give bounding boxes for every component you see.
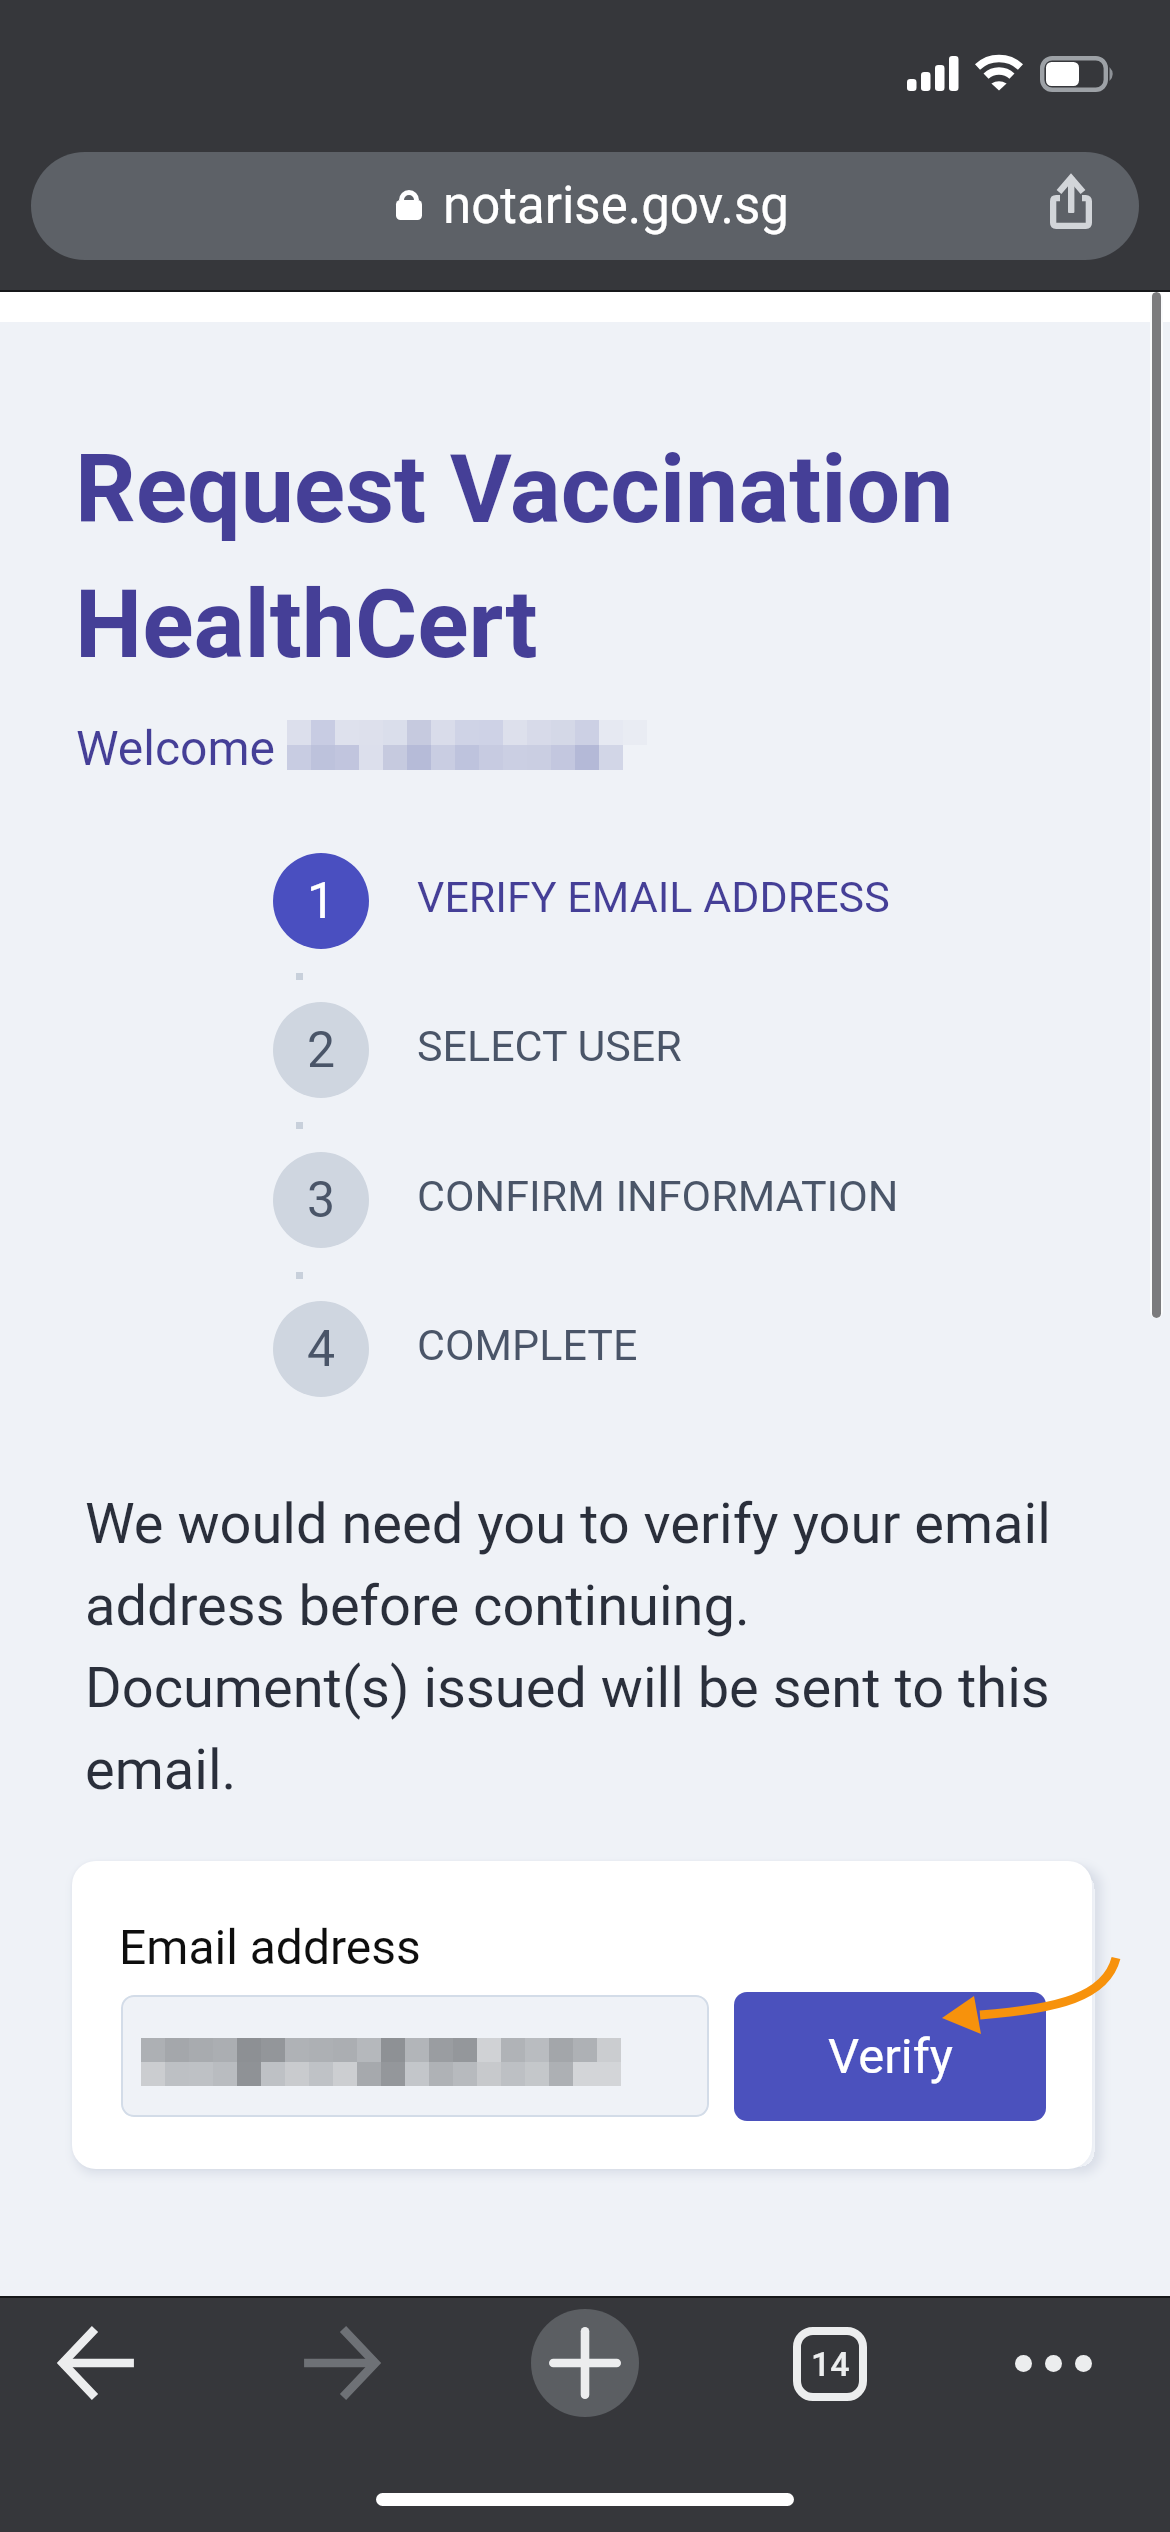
- button[interactable]: Share: [1040, 165, 1104, 229]
- button[interactable]: 1: [273, 853, 1063, 949]
- button[interactable]: Back: [36, 2291, 180, 2435]
- staticText: Request Vaccination HealthCert: [75, 434, 954, 680]
- button[interactable]: More: [984, 2294, 1122, 2432]
- button[interactable]: notarise.gov.sg: [31, 152, 1139, 260]
- button[interactable]: Forward: [258, 2291, 402, 2435]
- button[interactable]: Verify: [734, 1992, 1046, 2121]
- button[interactable]: 2: [273, 1002, 1063, 1098]
- staticText: CONFIRM INFORMATION: [417, 1171, 899, 1221]
- staticText: COMPLETE: [417, 1320, 638, 1370]
- staticText: Verify: [828, 2028, 953, 2085]
- button[interactable]: New tab: [507, 2285, 663, 2441]
- staticText: 4: [307, 1320, 336, 1379]
- staticText: 14: [811, 2344, 850, 2384]
- staticText: Welcome: [76, 720, 276, 776]
- staticText: notarise.gov.sg: [443, 176, 789, 236]
- staticText: VERIFY EMAIL ADDRESS: [417, 872, 890, 922]
- staticText: 1: [307, 872, 336, 931]
- staticText: Email address: [119, 1919, 421, 1975]
- staticText: We would need you to verify your email a…: [85, 1491, 1070, 1803]
- button[interactable]: 4: [273, 1301, 1063, 1397]
- button[interactable]: Tabs: [769, 2303, 891, 2425]
- button[interactable]: [121, 1995, 709, 2117]
- staticText: 3: [307, 1171, 336, 1230]
- staticText: 2: [307, 1021, 336, 1080]
- button[interactable]: 3: [273, 1152, 1063, 1248]
- staticText: SELECT USER: [417, 1021, 682, 1071]
